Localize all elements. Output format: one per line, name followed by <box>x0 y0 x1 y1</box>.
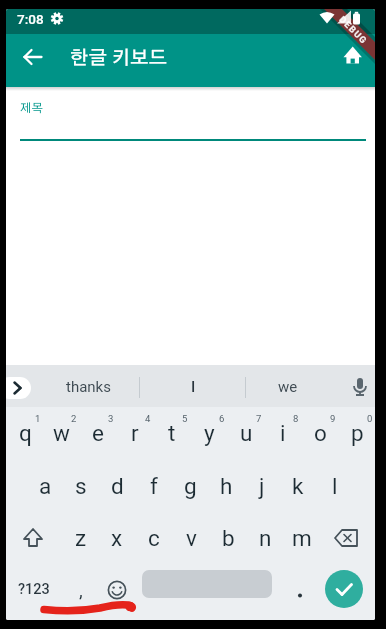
staticText: k <box>292 473 304 499</box>
button[interactable] <box>325 570 363 608</box>
staticText: 8 <box>293 413 299 424</box>
staticText: DEBUG <box>337 14 369 47</box>
staticText: I <box>191 378 196 396</box>
staticText: s <box>75 473 87 499</box>
staticText: we <box>278 378 298 396</box>
staticText: c <box>148 525 160 551</box>
button[interactable]: v <box>131 516 251 560</box>
button[interactable] <box>286 575 314 603</box>
button[interactable] <box>6 377 31 399</box>
button[interactable]: I <box>133 365 253 409</box>
staticText: w <box>53 420 70 446</box>
button[interactable]: l <box>275 464 375 508</box>
button[interactable]: thanks <box>28 365 148 409</box>
button[interactable]: u <box>186 411 306 455</box>
staticText: z <box>75 525 87 551</box>
staticText: l <box>332 473 338 499</box>
button[interactable]: e <box>38 411 158 455</box>
button[interactable]: w <box>6 411 121 455</box>
staticText: p <box>351 420 364 446</box>
staticText: 4 <box>145 413 151 424</box>
staticText: , <box>79 579 83 601</box>
staticText: m <box>292 525 312 551</box>
button[interactable]: t <box>112 411 232 455</box>
button[interactable]: g <box>130 464 250 508</box>
staticText: x <box>111 525 123 551</box>
staticText: f <box>150 473 158 499</box>
button[interactable] <box>142 570 272 598</box>
staticText: d <box>111 473 124 499</box>
staticText: 7 <box>256 413 262 424</box>
button[interactable]: s <box>21 464 141 508</box>
staticText: thanks <box>66 378 111 396</box>
button[interactable]: r <box>75 411 195 455</box>
button[interactable]: z <box>21 516 141 560</box>
button[interactable] <box>15 39 51 75</box>
button[interactable]: k <box>238 464 358 508</box>
staticText: 9 <box>330 413 336 424</box>
staticText: ?123 <box>18 581 50 598</box>
staticText: 제목 <box>20 102 44 114</box>
button[interactable]: i <box>223 411 343 455</box>
button[interactable] <box>15 520 53 556</box>
button[interactable]: d <box>57 464 177 508</box>
button[interactable]: we <box>228 365 348 409</box>
staticText: g <box>184 473 197 499</box>
staticText: 1 <box>35 413 41 424</box>
staticText: b <box>222 525 235 551</box>
button[interactable]: f <box>94 464 214 508</box>
staticText: 6 <box>219 413 225 424</box>
staticText: h <box>220 473 233 499</box>
staticText: 한글 키보드 <box>70 49 168 68</box>
button[interactable]: b <box>168 516 288 560</box>
button[interactable] <box>346 373 374 401</box>
button[interactable]: x <box>57 516 177 560</box>
staticText: i <box>280 420 286 446</box>
button[interactable]: h <box>166 464 286 508</box>
button[interactable]: q <box>6 411 85 455</box>
button[interactable] <box>328 520 368 556</box>
button[interactable]: m <box>242 516 362 560</box>
button[interactable]: , <box>21 568 141 612</box>
button[interactable]: n <box>205 516 325 560</box>
staticText: 7:08 <box>17 11 44 27</box>
button[interactable]: y <box>149 411 269 455</box>
button[interactable]: a <box>6 464 105 508</box>
staticText: q <box>19 420 32 446</box>
staticText: 3 <box>108 413 114 424</box>
staticText: t <box>168 420 176 446</box>
staticText: 2 <box>71 413 77 424</box>
button[interactable] <box>102 575 130 603</box>
staticText: o <box>314 420 327 446</box>
button[interactable]: ?123 <box>6 567 94 611</box>
staticText: a <box>39 473 52 499</box>
staticText: 5 <box>182 413 188 424</box>
button[interactable]: j <box>202 464 322 508</box>
button[interactable] <box>334 41 370 77</box>
button[interactable]: p <box>297 411 375 455</box>
staticText: 0 <box>367 413 373 424</box>
staticText: j <box>259 473 265 499</box>
button[interactable]: c <box>94 516 214 560</box>
staticText: e <box>92 420 104 446</box>
staticText: u <box>240 420 253 446</box>
staticText: y <box>204 420 215 446</box>
staticText: v <box>186 525 197 551</box>
button[interactable]: o <box>260 411 375 455</box>
staticText: r <box>131 420 139 446</box>
staticText: n <box>259 525 272 551</box>
